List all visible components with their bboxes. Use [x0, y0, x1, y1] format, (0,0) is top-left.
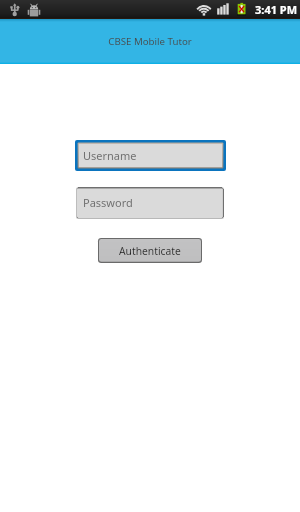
staticText: Authenticate [119, 244, 181, 258]
staticText: 3:41 PM [255, 2, 298, 17]
button[interactable]: Authenticate [98, 238, 202, 263]
staticText: CBSE Mobile Tutor [108, 35, 192, 48]
button[interactable]: Password [76, 187, 224, 219]
staticText: Username [83, 148, 137, 163]
button[interactable]: Username [75, 140, 226, 171]
staticText: Password [83, 195, 133, 210]
